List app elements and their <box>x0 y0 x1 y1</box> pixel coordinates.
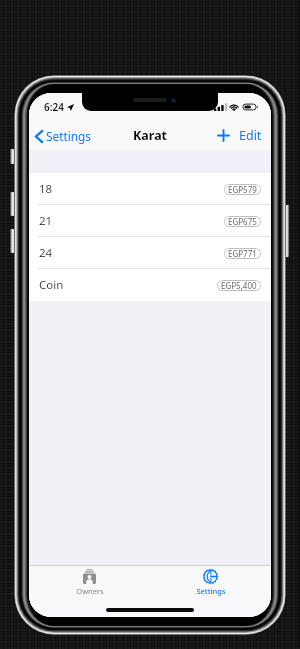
staticText: 6:24 <box>44 100 64 114</box>
staticText: Settings <box>196 586 226 596</box>
button[interactable]: 18 <box>29 173 271 205</box>
staticText: EGP579 <box>228 184 257 195</box>
staticText: 18 <box>39 181 53 197</box>
staticText: EGP675 <box>228 216 257 227</box>
staticText: Karat <box>133 127 168 144</box>
button[interactable]: Add <box>212 123 235 148</box>
staticText: Coin <box>39 277 64 293</box>
button[interactable]: Owners <box>29 566 150 617</box>
staticText: Edit <box>239 127 262 144</box>
button[interactable]: Edit <box>235 121 271 150</box>
button[interactable]: Settings <box>150 566 271 617</box>
staticText: 21 <box>39 213 53 229</box>
staticText: Settings <box>46 128 91 144</box>
staticText: Owners <box>76 586 104 596</box>
staticText: EGP5,400 <box>221 280 257 291</box>
staticText: EGP771 <box>228 248 257 259</box>
button[interactable]: Coin <box>29 269 271 301</box>
button[interactable]: 21 <box>29 205 271 237</box>
button[interactable]: Settings <box>29 123 99 149</box>
staticText: 24 <box>39 245 53 261</box>
button[interactable]: 24 <box>29 237 271 269</box>
